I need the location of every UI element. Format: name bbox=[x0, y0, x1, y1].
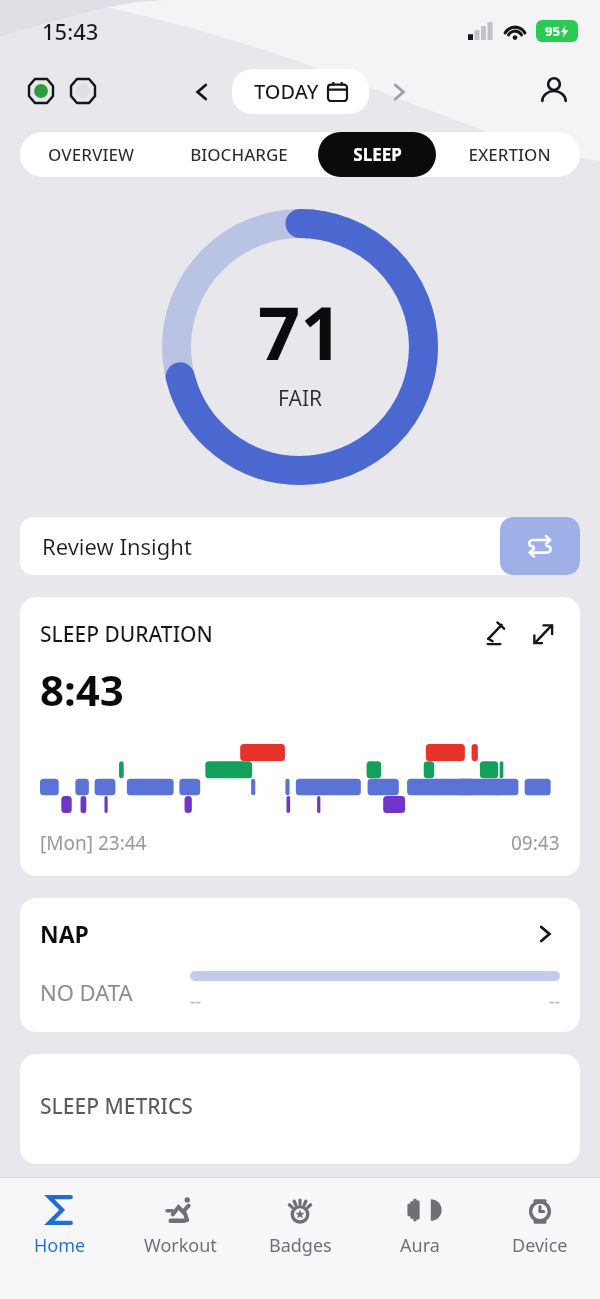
staticText: 71 bbox=[258, 281, 343, 382]
button[interactable]: Workout bbox=[120, 1178, 240, 1299]
button[interactable]: Aura bbox=[360, 1178, 480, 1299]
button[interactable]: Badges bbox=[240, 1178, 360, 1299]
button[interactable]: Refresh insight bbox=[500, 517, 580, 575]
staticText: BIOCHARGE bbox=[190, 143, 288, 166]
button[interactable]: Home bbox=[0, 1178, 120, 1299]
staticText: -- bbox=[190, 989, 201, 1012]
staticText: Review Insight bbox=[42, 531, 500, 561]
staticText: TODAY bbox=[254, 78, 319, 105]
staticText: Badges bbox=[269, 1233, 332, 1258]
button[interactable]: Device bbox=[480, 1178, 600, 1299]
button[interactable]: Review Insight bbox=[20, 517, 580, 575]
button[interactable]: Previous day bbox=[182, 72, 222, 112]
staticText: SLEEP METRICS bbox=[40, 1092, 193, 1121]
button[interactable]: EXERTION bbox=[440, 132, 578, 177]
staticText: 09:43 bbox=[511, 830, 560, 856]
button[interactable]: Watch 2 bbox=[68, 76, 98, 106]
staticText: 8:43 bbox=[40, 661, 124, 718]
button[interactable]: OVERVIEW bbox=[22, 132, 160, 177]
staticText: Home bbox=[34, 1233, 86, 1258]
staticText: NO DATA bbox=[40, 977, 190, 1007]
button[interactable]: Expand bbox=[526, 617, 560, 651]
button[interactable]: Next day bbox=[379, 72, 419, 112]
button[interactable]: TODAY bbox=[232, 69, 369, 114]
staticText: Device bbox=[512, 1233, 568, 1258]
button[interactable]: Watch 1 bbox=[26, 76, 56, 106]
button[interactable]: SLEEP DURATION bbox=[20, 597, 580, 876]
staticText: 95 bbox=[545, 22, 560, 40]
staticText: SLEEP bbox=[353, 143, 402, 166]
staticText: EXERTION bbox=[468, 143, 551, 166]
staticText: -- bbox=[549, 989, 560, 1012]
staticText: FAIR bbox=[278, 384, 323, 413]
other: Open nap bbox=[530, 919, 560, 949]
button[interactable]: SLEEP bbox=[318, 132, 436, 177]
staticText: [Mon] 23:44 bbox=[40, 830, 147, 856]
button[interactable]: Profile bbox=[534, 71, 574, 111]
staticText: Workout bbox=[144, 1233, 217, 1258]
button[interactable]: Edit bbox=[478, 617, 512, 651]
staticText: OVERVIEW bbox=[48, 143, 134, 166]
button[interactable]: BIOCHARGE bbox=[164, 132, 314, 177]
button[interactable]: SLEEP METRICS bbox=[20, 1054, 580, 1164]
staticText: SLEEP DURATION bbox=[40, 620, 478, 649]
button[interactable]: NAP bbox=[20, 898, 580, 1032]
staticText: 15:43 bbox=[42, 16, 99, 46]
staticText: Aura bbox=[400, 1233, 440, 1258]
staticText: NAP bbox=[40, 918, 530, 949]
